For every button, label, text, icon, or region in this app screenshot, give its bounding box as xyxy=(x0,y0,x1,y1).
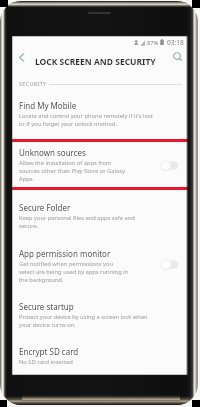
staticText: 87% xyxy=(147,39,159,47)
staticText: 03:18 xyxy=(167,38,184,47)
staticText: No SD card inserted xyxy=(19,358,73,366)
staticText: Apps. xyxy=(19,175,35,183)
staticText: the background. xyxy=(19,276,64,284)
staticText: Allow the installation of apps from xyxy=(19,159,112,167)
button[interactable]: Unknown sources xyxy=(12,143,188,187)
staticText: or if you forget your unlock method. xyxy=(19,120,117,128)
staticText: Secure Folder xyxy=(19,202,71,213)
staticText: your device turns on. xyxy=(19,321,76,329)
button[interactable]: Secure startup xyxy=(12,297,188,333)
button[interactable]: Back xyxy=(14,48,32,66)
staticText: Locate and control your phone remotely i… xyxy=(19,112,153,120)
staticText: Secure startup xyxy=(19,301,74,312)
button[interactable]: Secure Folder xyxy=(12,198,188,234)
staticText: select are being used by apps running in xyxy=(19,268,129,276)
staticText: Get notified when permissions you xyxy=(19,260,113,268)
staticText: Keep your personal files and apps safe a… xyxy=(19,214,135,222)
button[interactable]: App permission monitor xyxy=(12,244,188,288)
button[interactable]: Toggle Unknown sources xyxy=(159,159,182,172)
staticText: Protect your device by using a screen lo… xyxy=(19,313,148,321)
staticText: secure. xyxy=(19,222,39,230)
button[interactable]: Toggle App permission monitor xyxy=(159,258,182,271)
staticText: Encrypt SD card xyxy=(19,346,79,357)
button[interactable]: Encrypt SD card xyxy=(12,342,188,369)
button[interactable]: Search xyxy=(169,48,187,66)
staticText: sources other than Play Store or Galaxy xyxy=(19,167,126,175)
staticText: LOCK SCREEN AND SECURITY xyxy=(35,56,156,68)
staticText: Unknown sources xyxy=(19,147,86,158)
staticText: App permission monitor xyxy=(19,248,111,259)
staticText: SECURITY xyxy=(19,80,47,88)
button[interactable]: Find My Mobile xyxy=(12,96,188,132)
staticText: Find My Mobile xyxy=(19,100,77,111)
